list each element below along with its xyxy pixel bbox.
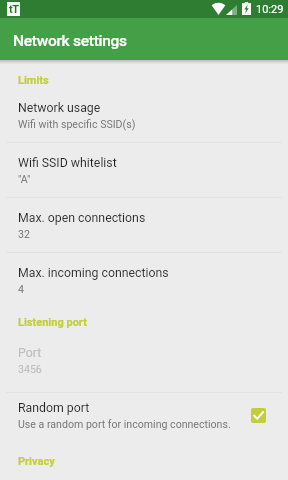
staticText: Listening port [18, 316, 87, 329]
staticText: Max. incoming connections [18, 266, 169, 280]
staticText: tT [9, 3, 19, 16]
staticText: 10:29 [256, 3, 284, 16]
staticText: "A" [18, 173, 31, 185]
staticText: Network settings [13, 32, 127, 50]
staticText: Use a random port for incoming connectio… [18, 418, 231, 430]
staticText: Wifi with specific SSID(s) [18, 118, 136, 130]
staticText: 3456 [18, 363, 42, 375]
button[interactable]: Port [0, 330, 288, 384]
staticText: 32 [18, 228, 30, 240]
other: Transmission notification [7, 2, 20, 16]
button[interactable]: Network settings [0, 18, 288, 60]
button[interactable]: Network usage [0, 88, 288, 142]
button[interactable]: Random port [0, 393, 288, 447]
button[interactable]: Wifi SSID whitelist [0, 143, 288, 197]
button[interactable]: Max. open connections [0, 198, 288, 252]
button[interactable]: Random port, checked [251, 408, 266, 423]
other: Wi-Fi connected [211, 3, 226, 15]
other: Mobile signal [226, 5, 237, 15]
staticText: Wifi SSID whitelist [18, 156, 117, 170]
staticText: Limits [18, 74, 49, 87]
staticText: Max. open connections [18, 211, 146, 225]
staticText: Privacy [18, 455, 55, 468]
staticText: Network usage [18, 101, 101, 115]
button[interactable]: Max. incoming connections [0, 253, 288, 307]
other: Battery charging [242, 2, 251, 15]
staticText: Port [18, 346, 42, 360]
staticText: 4 [18, 283, 24, 295]
staticText: Random port [18, 401, 90, 415]
